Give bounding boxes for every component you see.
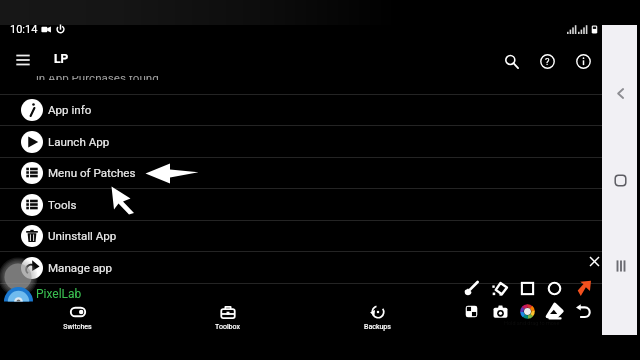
staticText: Switches (63, 323, 92, 331)
button[interactable]: Close (583, 250, 605, 272)
staticText: Menu of Patches (48, 166, 136, 180)
button[interactable]: Back (605, 78, 636, 109)
button[interactable]: Highlighter (489, 277, 511, 299)
staticText: App info (48, 103, 92, 117)
staticText: PixelLab (36, 287, 82, 301)
button[interactable]: Screenshot (489, 300, 511, 322)
button[interactable]: Switches (41, 301, 113, 335)
button[interactable]: Launch App (0, 126, 604, 158)
staticText: Uninstall App (48, 229, 117, 243)
button[interactable]: Home (605, 165, 636, 196)
staticText: Manage app (48, 261, 112, 275)
staticText: ? (545, 56, 550, 67)
staticText: Toolbox (215, 323, 240, 331)
staticText: 10:14 (10, 23, 38, 36)
button[interactable]: Oval (543, 277, 565, 299)
button[interactable]: Rectangle (516, 277, 538, 299)
staticText: in App Purchases found. (36, 76, 162, 80)
staticText: LP (54, 52, 69, 66)
button[interactable]: Search (497, 47, 525, 75)
staticText: Tools (48, 198, 77, 212)
button[interactable]: Manage app (0, 252, 604, 284)
button[interactable]: Help (533, 47, 561, 75)
button[interactable]: Undo (572, 300, 594, 322)
button[interactable]: Tools (0, 189, 604, 221)
button[interactable]: Backups (341, 301, 413, 335)
staticText: Backups (364, 323, 391, 331)
button[interactable]: Mosaic (460, 300, 482, 322)
button[interactable]: Toolbox (191, 301, 263, 335)
button[interactable]: Info (569, 47, 597, 75)
staticText: Launch App (48, 135, 110, 149)
button[interactable]: Recent apps (605, 250, 636, 281)
button[interactable]: Menu of Patches (0, 157, 604, 189)
button[interactable]: Uninstall App (0, 220, 604, 252)
button[interactable]: Open navigation drawer (9, 46, 37, 74)
button[interactable]: Eraser (543, 300, 565, 322)
button[interactable]: Brush (460, 277, 482, 299)
button[interactable]: App info (0, 94, 604, 126)
button[interactable]: Arrow (572, 277, 594, 299)
button[interactable]: Colour (516, 300, 538, 322)
